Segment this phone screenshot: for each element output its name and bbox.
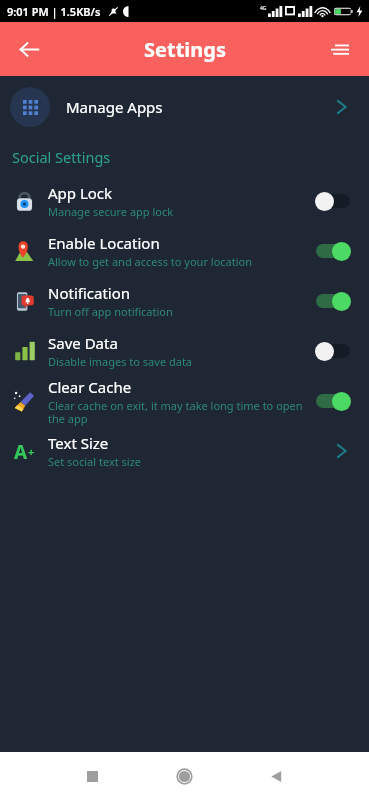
- button[interactable]: Home: [163, 755, 205, 797]
- button[interactable]: Open: [327, 437, 355, 465]
- staticText: Disable images to save data: [48, 354, 193, 369]
- staticText: Turn off app notification: [48, 304, 173, 319]
- button[interactable]: Menu: [319, 28, 361, 70]
- button[interactable]: Back: [255, 755, 297, 797]
- button[interactable]: App Lock toggle: [311, 188, 355, 214]
- staticText: Notification: [48, 283, 131, 303]
- button[interactable]: Back: [8, 28, 50, 70]
- staticText: Set social text size: [48, 454, 142, 469]
- button[interactable]: Enable Location: [0, 226, 369, 276]
- staticText: +: [28, 444, 35, 459]
- staticText: Manage secure app lock: [48, 204, 174, 219]
- staticText: Settings: [144, 36, 226, 63]
- button[interactable]: Clear Cache toggle: [311, 388, 355, 414]
- button[interactable]: A: [0, 426, 369, 476]
- staticText: Manage Apps: [66, 97, 327, 117]
- staticText: Save Data: [48, 333, 118, 353]
- staticText: 9:01 PM | 1.5KB/s: [7, 4, 101, 19]
- button[interactable]: Recents: [71, 755, 113, 797]
- button[interactable]: Enable Location toggle: [311, 238, 355, 264]
- staticText: Clear Cache: [48, 377, 132, 397]
- button[interactable]: Notification toggle: [311, 288, 355, 314]
- staticText: A: [14, 439, 28, 463]
- staticText: Clear cache on exit, it may take long ti…: [48, 398, 303, 426]
- button[interactable]: Save Data: [0, 326, 369, 376]
- button[interactable]: Manage Apps: [0, 76, 369, 138]
- button[interactable]: Notification: [0, 276, 369, 326]
- button[interactable]: Save Data toggle: [311, 338, 355, 364]
- staticText: Allow to get and access to your location: [48, 254, 253, 269]
- button[interactable]: App Lock: [0, 176, 369, 226]
- staticText: App Lock: [48, 183, 113, 203]
- staticText: Enable Location: [48, 233, 160, 253]
- staticText: Social Settings: [12, 147, 111, 167]
- staticText: 4G: [260, 5, 267, 12]
- button[interactable]: Open: [327, 93, 355, 121]
- staticText: Text Size: [48, 433, 109, 453]
- button[interactable]: Clear Cache: [0, 376, 369, 426]
